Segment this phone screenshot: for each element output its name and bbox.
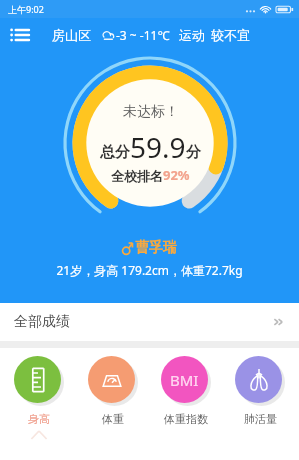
staticText: 曹孚瑞 [135,239,177,257]
staticText: 上午9:02 [8,3,44,15]
staticText: 体重 [102,412,124,426]
staticText: 未达标！ [123,103,179,121]
staticText: 肺活量 [244,412,277,426]
button[interactable]: 体重 [79,356,147,426]
staticText: 总分 [100,143,130,162]
button[interactable]: 较不宜 [211,27,250,43]
staticText: 分 [186,143,201,162]
staticText: 全部成绩 [14,313,70,331]
staticText: 59.9 [130,128,186,166]
button[interactable]: 房山区 [52,27,91,43]
staticText: 全校排名 [111,168,163,184]
staticText: 21岁，身高 179.2cm，体重72.7kg [0,262,299,278]
staticText: 体重指数 [164,412,208,426]
button[interactable]: BMI [152,356,220,426]
button[interactable]: 肺活量 [226,356,294,426]
button[interactable]: 身高 [5,356,73,439]
button[interactable]: 运动 [179,27,205,43]
button[interactable]: Menu [0,18,38,52]
staticText: BMI [170,370,199,390]
staticText: 92% [163,166,190,184]
button[interactable]: 全部成绩 [0,303,299,341]
staticText: 身高 [28,412,50,426]
staticText: -3 ~ -11℃ [116,27,170,43]
